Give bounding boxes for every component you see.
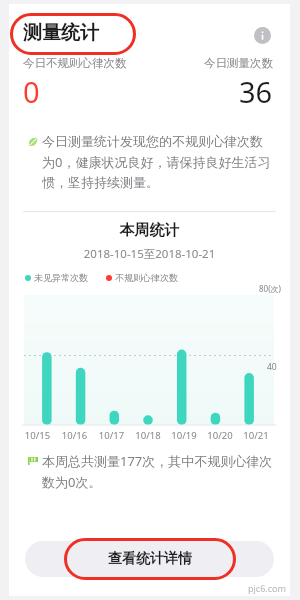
staticText: 不规则心律次数 bbox=[115, 272, 178, 283]
staticText: 今日测量统计发现您的不规则心律次数为0，健康状况良好，请保持良好生活习惯，坚持持… bbox=[42, 133, 275, 191]
staticText: 测量统计 bbox=[23, 21, 99, 45]
staticText: 40 bbox=[267, 361, 277, 373]
staticText: pjc6.com bbox=[248, 582, 286, 594]
staticText: 查看统计详情 bbox=[108, 550, 192, 568]
staticText: 80(次) bbox=[259, 283, 281, 294]
staticText: 未见异常次数 bbox=[34, 272, 88, 283]
staticText: 今日不规则心律次数 bbox=[23, 56, 127, 70]
button[interactable]: 查看统计详情 bbox=[25, 541, 274, 577]
staticText: 0 bbox=[23, 72, 40, 111]
staticText: 10/18 bbox=[130, 429, 166, 442]
staticText: 2018-10-15至2018-10-21 bbox=[9, 246, 290, 262]
staticText: 本周总共测量177次，其中不规则心律次数为0次。 bbox=[42, 452, 276, 491]
staticText: 10/17 bbox=[93, 429, 130, 442]
staticText: 10/19 bbox=[166, 429, 202, 442]
staticText: 10/16 bbox=[56, 429, 93, 442]
staticText: 36 bbox=[239, 72, 273, 111]
staticText: 10/20 bbox=[202, 429, 238, 442]
staticText: 今日测量次数 bbox=[204, 56, 273, 70]
staticText: 10/21 bbox=[238, 429, 274, 442]
staticText: 10/15 bbox=[19, 429, 56, 442]
button[interactable]: 信息 bbox=[251, 24, 273, 46]
staticText: 本周统计 bbox=[9, 221, 290, 240]
